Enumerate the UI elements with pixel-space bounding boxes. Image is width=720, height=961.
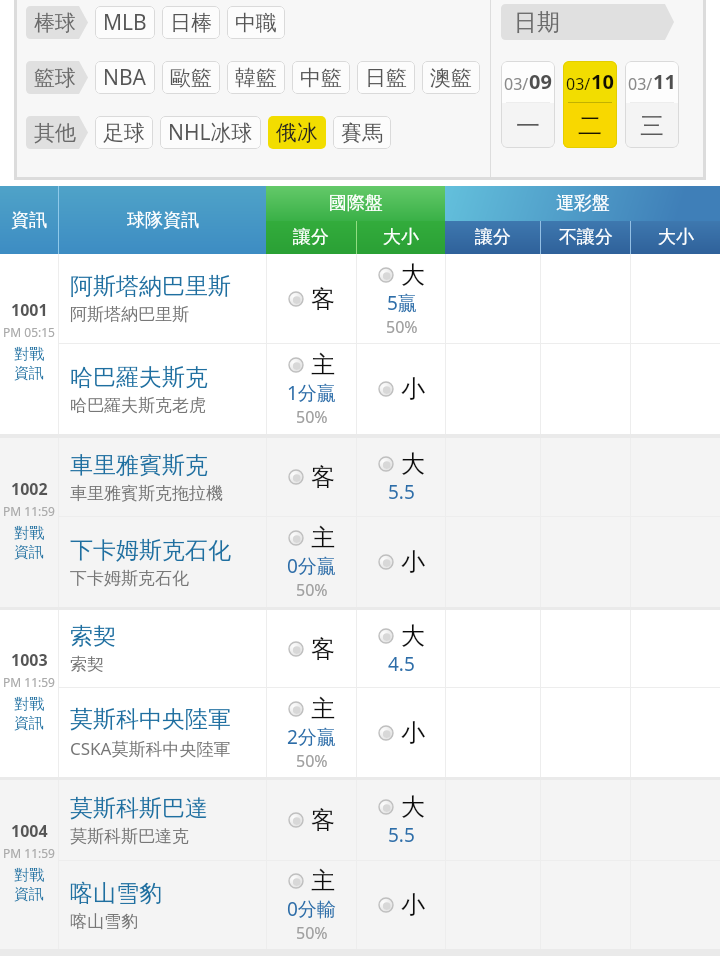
staticText: 小: [401, 547, 425, 577]
button[interactable]: 日期: [501, 4, 674, 40]
button[interactable]: 1002 PM 11:59 對戰資訊: [0, 438, 58, 607]
staticText: 小: [401, 374, 425, 404]
button[interactable]: 主: [267, 344, 356, 434]
staticText: 歐籃: [170, 65, 212, 91]
button[interactable]: MLB: [95, 6, 155, 39]
button[interactable]: 賽馬: [333, 116, 391, 149]
button[interactable]: 小: [357, 861, 445, 949]
button[interactable]: 客: [267, 438, 356, 516]
button[interactable]: 1004 PM 11:59 對戰資訊: [0, 780, 58, 949]
button[interactable]: 主: [267, 517, 356, 607]
staticText: 50%: [296, 750, 328, 772]
staticText: 籃球: [34, 65, 76, 91]
button[interactable]: NHL冰球: [160, 116, 261, 149]
staticText: 50%: [296, 406, 328, 428]
staticText: 1003: [11, 649, 48, 671]
button[interactable]: 中職: [227, 6, 285, 39]
button[interactable]: 中籃: [292, 61, 350, 94]
button[interactable]: 日棒: [162, 6, 220, 39]
staticText: 索契: [70, 622, 116, 651]
button[interactable]: 客: [267, 254, 356, 343]
button[interactable]: 大: [357, 438, 445, 516]
staticText: 5.5: [388, 479, 415, 505]
button[interactable]: 主: [267, 688, 356, 777]
staticText: 國際盤: [329, 192, 383, 215]
staticText: 下卡姆斯克石化: [70, 568, 189, 589]
staticText: 資訊: [14, 543, 44, 562]
staticText: 其他: [34, 120, 76, 146]
button[interactable]: 大: [357, 254, 445, 343]
button[interactable]: 03/11: [625, 61, 679, 148]
staticText: 對戰: [14, 866, 44, 885]
button[interactable]: 車里雅賓斯克: [59, 438, 266, 516]
button[interactable]: 歐籃: [162, 61, 220, 94]
staticText: 莫斯科中央陸軍: [70, 705, 231, 734]
button[interactable]: 大: [357, 780, 445, 860]
staticText: 客: [311, 284, 335, 314]
staticText: 主: [311, 866, 335, 896]
staticText: 日籃: [365, 65, 407, 91]
button[interactable]: 1001 PM 05:15 對戰資訊: [0, 254, 58, 434]
button[interactable]: 03/09: [501, 61, 555, 148]
button[interactable]: 客: [267, 610, 356, 687]
button[interactable]: 足球: [95, 116, 153, 149]
staticText: 阿斯塔納巴里斯: [70, 272, 231, 301]
button[interactable]: 03/10: [563, 61, 617, 148]
button[interactable]: 大: [357, 610, 445, 687]
button[interactable]: 小: [357, 688, 445, 777]
button[interactable]: 主: [267, 861, 356, 949]
button[interactable]: 莫斯科中央陸軍: [59, 688, 266, 777]
button[interactable]: 俄冰: [268, 116, 326, 149]
button[interactable]: 下卡姆斯克石化: [59, 517, 266, 607]
button[interactable]: 客: [267, 780, 356, 860]
button[interactable]: 1003 PM 11:59 對戰資訊: [0, 610, 58, 777]
staticText: 4.5: [388, 651, 415, 677]
staticText: 客: [311, 634, 335, 664]
button[interactable]: 小: [357, 517, 445, 607]
button[interactable]: 莫斯科斯巴達: [59, 780, 266, 860]
button[interactable]: 韓籃: [227, 61, 285, 94]
staticText: 0分贏: [287, 553, 336, 579]
staticText: 運彩盤: [556, 192, 610, 215]
button[interactable]: NBA: [95, 61, 155, 94]
button[interactable]: 索契: [59, 610, 266, 687]
button[interactable]: 哈巴羅夫斯克: [59, 344, 266, 434]
staticText: 對戰: [14, 524, 44, 543]
button[interactable]: 日籃: [357, 61, 415, 94]
button[interactable]: 棒球: [26, 6, 88, 39]
button[interactable]: 小: [357, 344, 445, 434]
staticText: 03/: [566, 73, 591, 95]
button[interactable]: 其他: [26, 116, 88, 149]
button[interactable]: 喀山雪豹: [59, 861, 266, 949]
button[interactable]: 籃球: [26, 61, 88, 94]
staticText: 資訊: [14, 714, 44, 733]
button[interactable]: 澳籃: [422, 61, 480, 94]
staticText: 大: [401, 449, 425, 479]
staticText: PM 05:15: [3, 324, 55, 340]
button[interactable]: 阿斯塔納巴里斯: [59, 254, 266, 343]
